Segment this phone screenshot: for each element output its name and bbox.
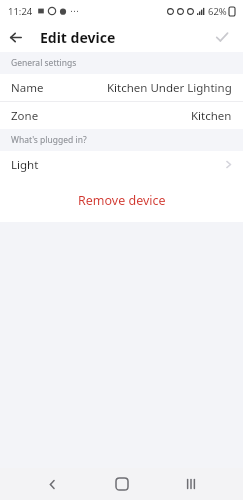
button[interactable]: Save: [205, 22, 239, 52]
button[interactable]: Remove device: [0, 178, 243, 222]
staticText: General settings: [11, 57, 77, 69]
staticText: Name: [11, 80, 44, 96]
button[interactable]: Back: [0, 22, 30, 52]
staticText: Edit device: [40, 28, 116, 47]
staticText: Remove device: [78, 192, 166, 209]
staticText: Kitchen: [191, 108, 232, 124]
button[interactable]: Zone: [0, 102, 243, 129]
button[interactable]: Home: [104, 468, 140, 500]
staticText: 11:24: [8, 5, 33, 18]
button[interactable]: Recents: [173, 468, 209, 500]
button[interactable]: Name: [0, 74, 243, 101]
staticText: Light: [11, 157, 39, 173]
staticText: Kitchen Under Lighting: [107, 80, 232, 96]
staticText: What's plugged in?: [11, 134, 87, 146]
button[interactable]: Back: [34, 468, 70, 500]
staticText: ⋯: [70, 6, 79, 16]
button[interactable]: Light: [0, 151, 243, 178]
staticText: 62%: [208, 5, 227, 18]
staticText: Zone: [11, 108, 39, 124]
